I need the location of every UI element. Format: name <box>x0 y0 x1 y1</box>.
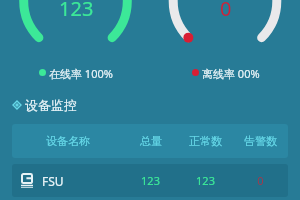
staticText: 0 <box>257 173 264 188</box>
button[interactable]: FSU <box>12 164 288 197</box>
staticText: FSU <box>42 173 64 189</box>
staticText: 告警数 <box>244 134 277 148</box>
staticText: 123 <box>141 173 160 188</box>
staticText: 总量 <box>140 134 162 148</box>
button[interactable]: 设备监控 <box>6 97 77 113</box>
staticText: 设备名称 <box>46 134 90 148</box>
staticText: 123 <box>196 173 215 188</box>
staticText: 0 <box>220 0 232 22</box>
staticText: 离线率 00% <box>202 66 260 81</box>
staticText: 123 <box>59 0 94 22</box>
staticText: 正常数 <box>189 134 222 148</box>
staticText: 设备监控 <box>25 97 77 113</box>
staticText: 在线率 100% <box>49 66 113 81</box>
